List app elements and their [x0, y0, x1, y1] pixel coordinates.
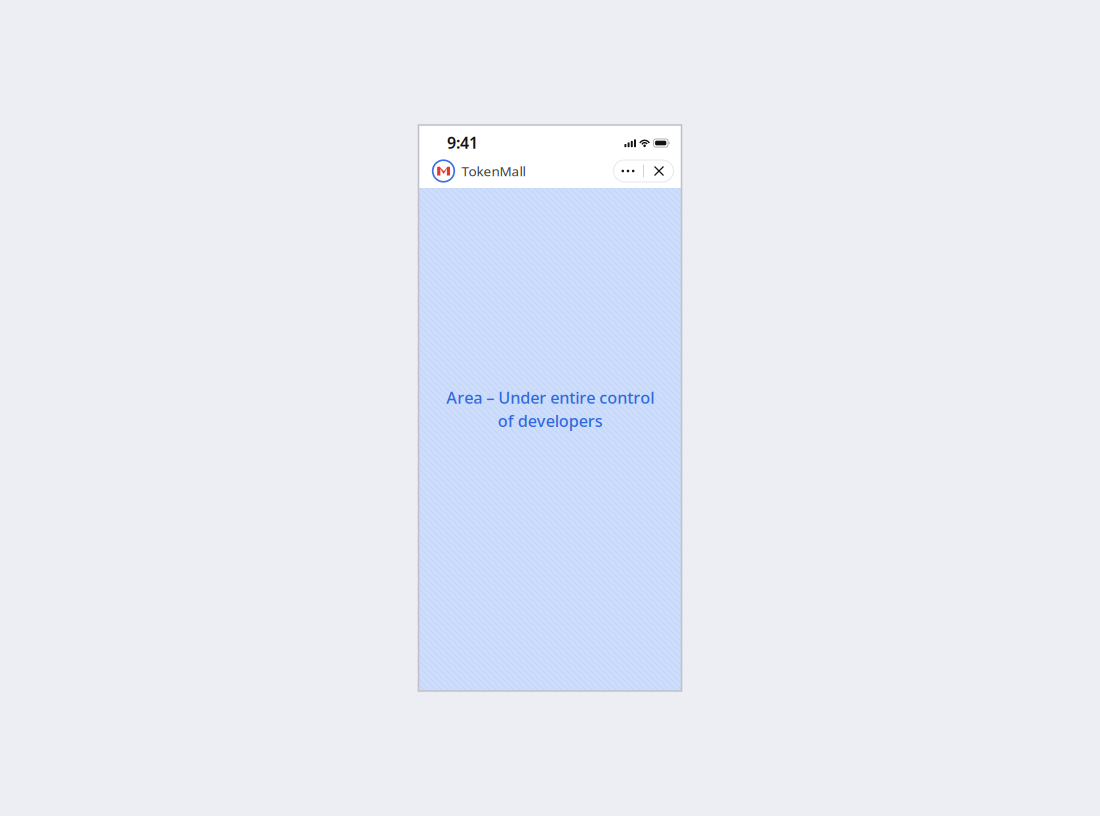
- button[interactable]: Close: [644, 160, 674, 182]
- staticText: TokenMall: [461, 162, 525, 180]
- staticText: 9:41: [447, 132, 478, 153]
- button[interactable]: TokenMall: [432, 160, 525, 182]
- staticText: Area – Under entire control of developer…: [446, 386, 654, 432]
- button[interactable]: More: [613, 160, 643, 182]
